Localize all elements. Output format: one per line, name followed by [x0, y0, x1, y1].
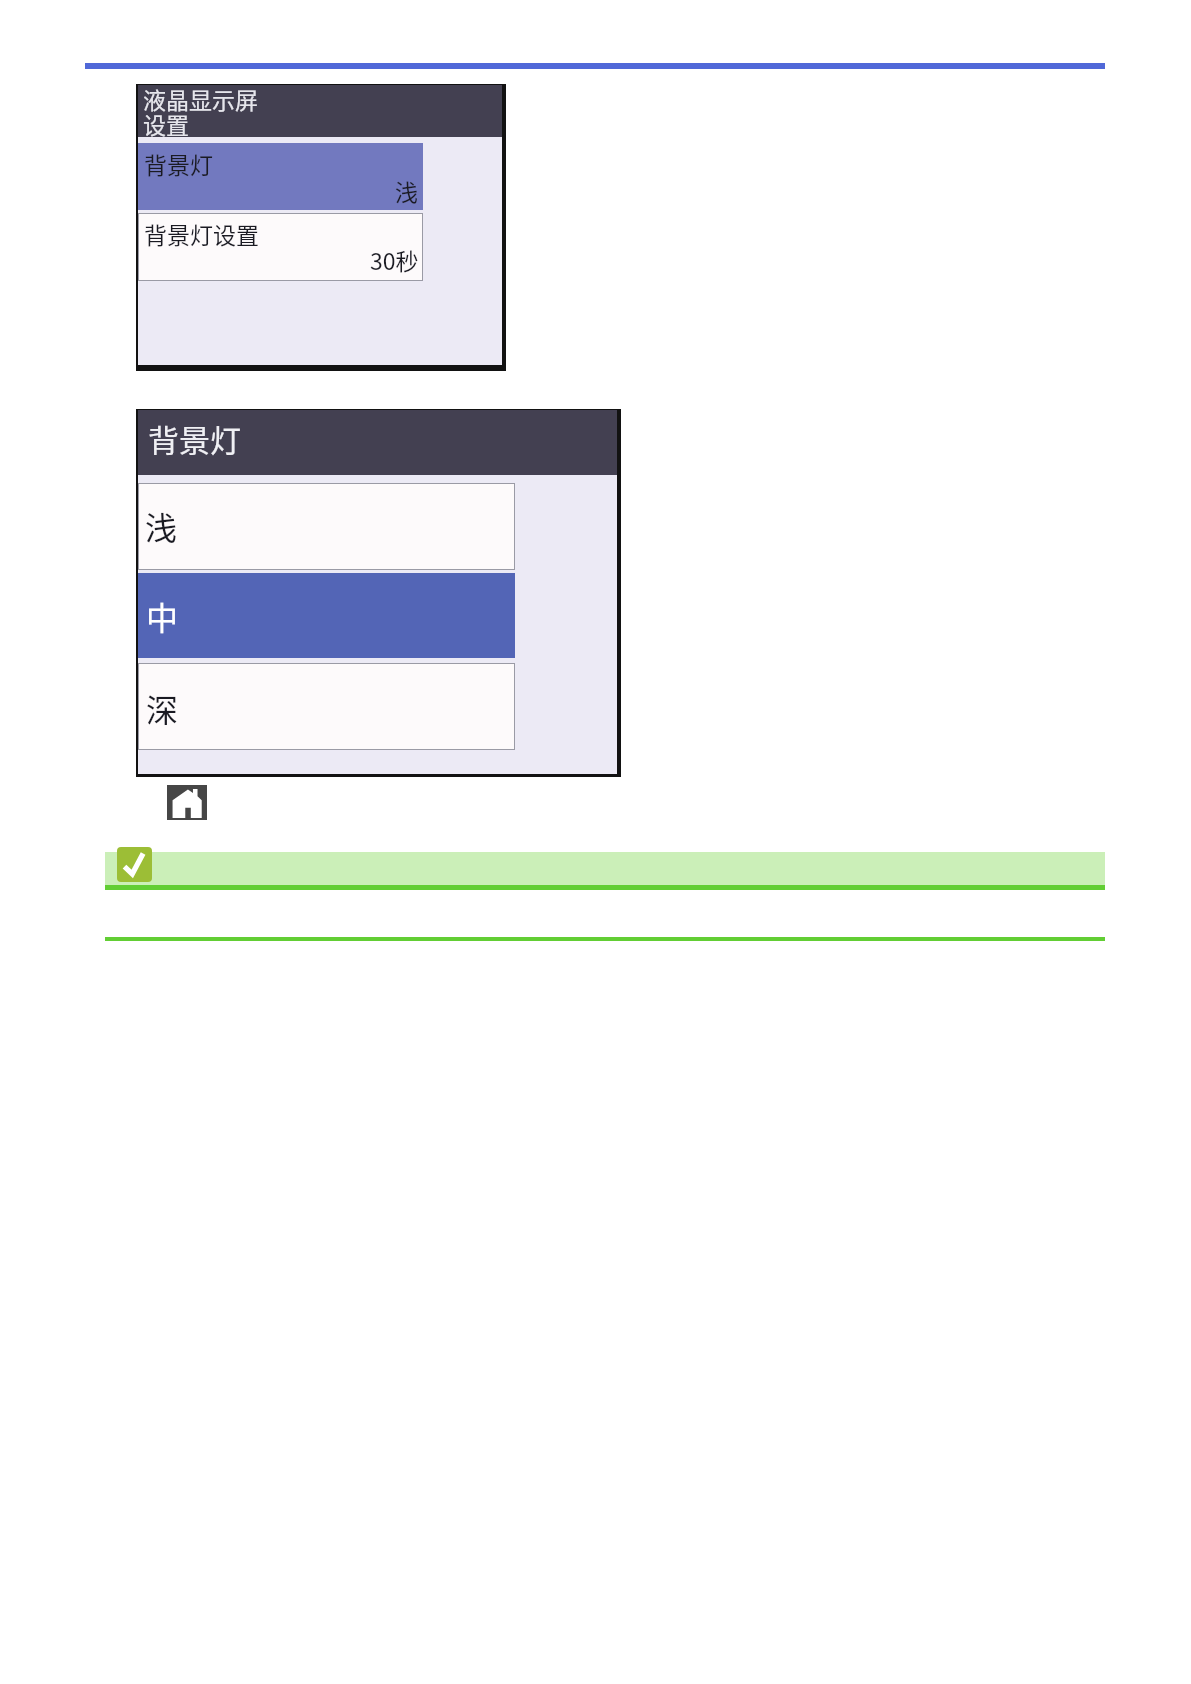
staticText: 中 — [146, 593, 179, 639]
button[interactable]: 背景灯设置 — [138, 213, 423, 281]
staticText: 深 — [146, 685, 179, 731]
staticText: 背景灯设置 — [144, 217, 259, 250]
staticText: 30秒 — [370, 243, 419, 276]
button[interactable]: 深 — [138, 663, 515, 750]
button[interactable]: 中 — [138, 573, 515, 658]
staticText: 背景灯 — [148, 416, 241, 461]
staticText: 浅 — [145, 503, 178, 549]
staticText: 背景灯 — [144, 147, 213, 180]
staticText: 浅 — [395, 174, 418, 207]
staticText: 设置 — [143, 107, 189, 140]
button[interactable]: 背景灯 — [138, 143, 423, 210]
other: Tip — [117, 847, 152, 882]
button[interactable]: 浅 — [138, 483, 515, 570]
button[interactable]: Home — [167, 785, 207, 820]
staticText: 液晶显示屏 — [143, 82, 258, 115]
